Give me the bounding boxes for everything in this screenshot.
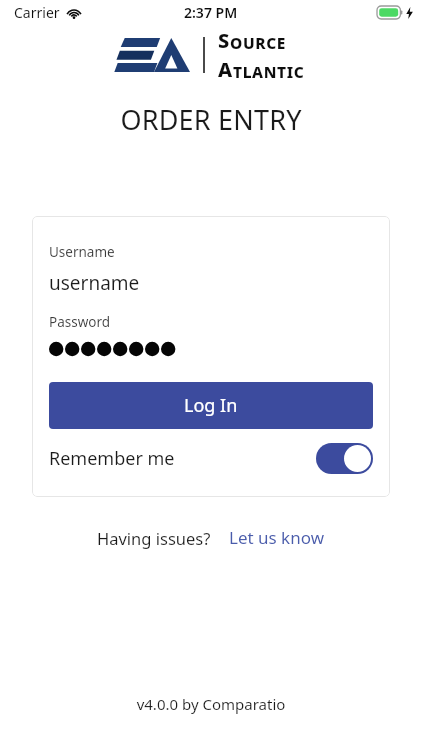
staticText: A (218, 56, 233, 83)
button[interactable] (49, 338, 373, 360)
button[interactable]: Log In (49, 382, 373, 429)
other: Remember me toggle, on (316, 443, 373, 474)
button[interactable]: Remember me (49, 441, 373, 475)
staticText: OURCE (230, 32, 286, 53)
staticText: Carrier (14, 3, 60, 22)
staticText: S (218, 27, 230, 54)
staticText: Remember me (49, 446, 175, 471)
staticText: ORDER ENTRY (0, 101, 422, 138)
staticText: Log In (184, 393, 238, 418)
staticText: Username (49, 243, 115, 261)
staticText: v4.0.0 by Comparatio (0, 694, 422, 714)
button[interactable]: username (49, 270, 373, 296)
staticText: Having issues? (97, 527, 211, 549)
staticText: 2:37 PM (184, 3, 238, 22)
button[interactable]: Let us know (229, 526, 325, 549)
staticText: Let us know (229, 526, 325, 549)
staticText: Password (49, 313, 111, 331)
staticText: TLANTIC (233, 61, 305, 82)
